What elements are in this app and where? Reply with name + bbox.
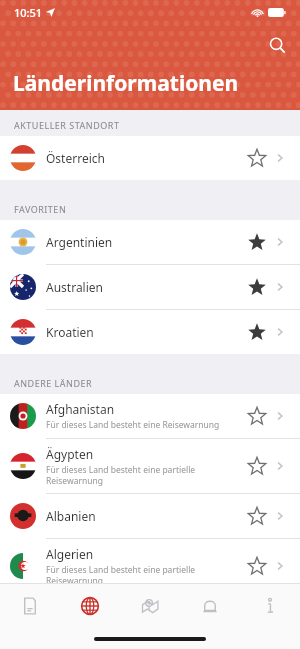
staticText: Argentinien [46, 234, 113, 250]
staticText: Ägypten [46, 446, 94, 462]
staticText: Länderinformationen [13, 69, 239, 98]
staticText: AKTUELLER STANDORT [14, 119, 120, 131]
staticText: Kroatien [46, 324, 94, 340]
staticText: Für dieses Land besteht eine Reisewarnun… [46, 419, 220, 431]
button[interactable]: Suche [264, 32, 290, 58]
staticText: Afghanistan [46, 401, 115, 417]
button[interactable]: Albanien [0, 494, 300, 539]
button[interactable]: Österreich [0, 136, 300, 180]
button[interactable]: Remove favorite [242, 227, 272, 257]
button[interactable]: Info [240, 584, 300, 628]
staticText: Für dieses Land besteht eine partielle R… [46, 564, 242, 583]
staticText: 10:51 [14, 5, 43, 20]
button[interactable]: Remove favorite [242, 317, 272, 347]
staticText: Algerien [46, 546, 94, 562]
button[interactable]: Algerien [0, 539, 300, 583]
staticText: Albanien [46, 508, 96, 524]
staticText: Für dieses Land besteht eine partielle R… [46, 464, 242, 486]
staticText: Österreich [46, 150, 105, 166]
button[interactable]: Add favorite [242, 501, 272, 531]
button[interactable]: Remove favorite [242, 272, 272, 302]
button[interactable]: Add favorite [242, 451, 272, 481]
button[interactable]: Notfall [180, 584, 240, 628]
button[interactable]: Kroatien [0, 310, 300, 354]
button[interactable]: Add favorite [242, 143, 272, 173]
button[interactable]: Argentinien [0, 220, 300, 265]
button[interactable]: Dokumente [0, 584, 60, 628]
button[interactable]: Ägypten [0, 439, 300, 494]
staticText: Australien [46, 279, 103, 295]
button[interactable]: Add favorite [242, 551, 272, 581]
staticText: ANDERE LÄNDER [14, 377, 93, 389]
button[interactable]: Länder [60, 584, 120, 628]
button[interactable]: Australien [0, 265, 300, 310]
button[interactable]: Karte [120, 584, 180, 628]
staticText: FAVORITEN [14, 203, 67, 215]
button[interactable]: Afghanistan [0, 394, 300, 439]
button[interactable]: Add favorite [242, 401, 272, 431]
